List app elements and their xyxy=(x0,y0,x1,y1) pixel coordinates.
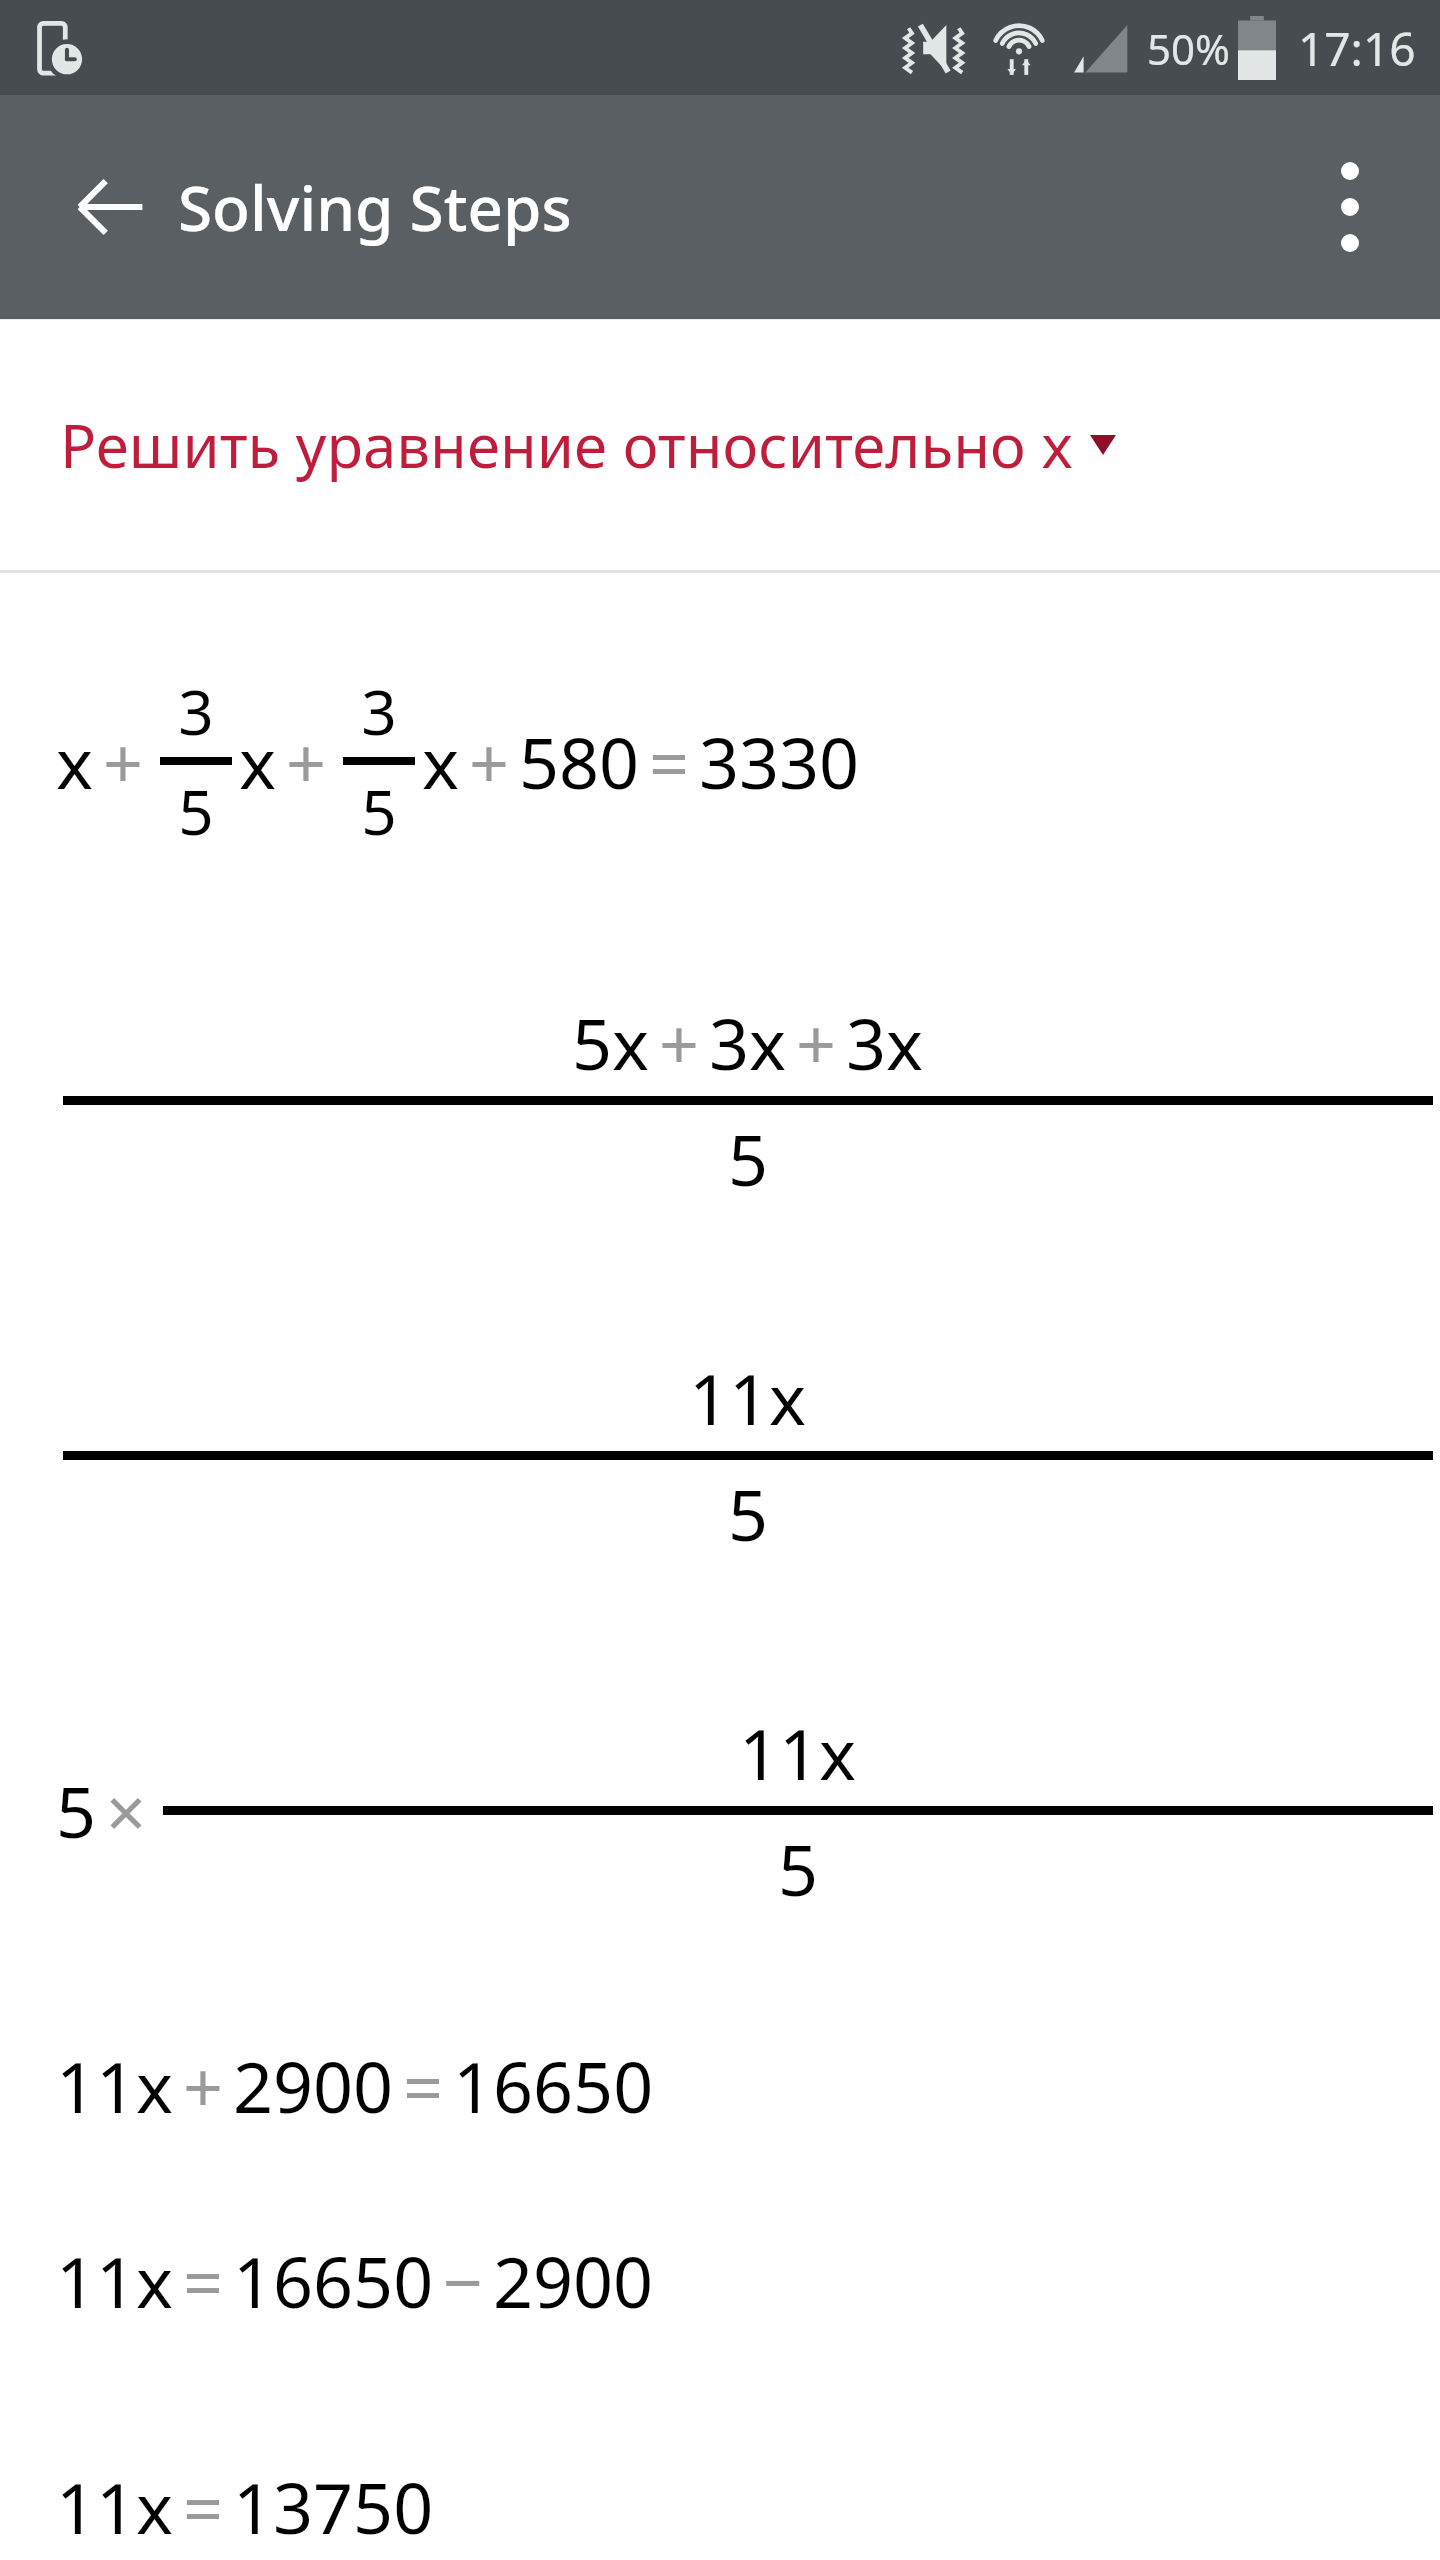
button[interactable]: 11x xyxy=(0,2383,1440,2560)
staticText: 5 xyxy=(728,1111,769,1206)
button[interactable]: Back xyxy=(38,135,182,279)
staticText: 11x xyxy=(739,1705,857,1800)
button[interactable]: 5 xyxy=(0,1613,1440,1973)
button[interactable]: Решить уравнение относительно x xyxy=(0,320,1440,570)
staticText: 2900 xyxy=(233,2038,394,2133)
staticText: 5 xyxy=(56,1763,97,1858)
staticText: 11x xyxy=(56,2459,174,2554)
button[interactable]: 5x xyxy=(0,903,1440,1263)
staticText: = xyxy=(183,2459,224,2554)
staticText: x xyxy=(422,714,460,809)
staticText: 3x xyxy=(846,995,924,1090)
staticText: 11x xyxy=(689,1350,807,1445)
staticText: + xyxy=(659,995,700,1090)
staticText: 2900 xyxy=(493,2233,654,2328)
staticText: + xyxy=(796,995,837,1090)
staticText: + xyxy=(286,714,327,809)
staticText: = xyxy=(649,714,690,809)
button[interactable]: 11x xyxy=(0,2178,1440,2383)
staticText: 3 xyxy=(361,669,397,753)
staticText: 11x xyxy=(56,2038,174,2133)
staticText: 16650 xyxy=(453,2038,654,2133)
staticText: 5 xyxy=(728,1466,769,1561)
staticText: 3x xyxy=(709,995,787,1090)
staticText: x xyxy=(239,714,277,809)
staticText: 5 xyxy=(361,769,397,853)
staticText: 5 xyxy=(178,769,214,853)
staticText: 13750 xyxy=(233,2459,434,2554)
staticText: 3330 xyxy=(699,714,860,809)
staticText: Решить уравнение относительно x xyxy=(60,404,1074,486)
staticText: − xyxy=(443,2233,484,2328)
button[interactable]: x xyxy=(0,573,1440,903)
button[interactable]: 11x xyxy=(0,1973,1440,2178)
staticText: 3 xyxy=(178,669,214,753)
staticText: + xyxy=(469,714,510,809)
staticText: 16650 xyxy=(233,2233,434,2328)
staticText: 50% xyxy=(1147,20,1230,77)
staticText: 580 xyxy=(519,714,640,809)
staticText: 11x xyxy=(56,2233,174,2328)
staticText: + xyxy=(103,714,144,809)
button[interactable]: 11x xyxy=(0,1263,1440,1613)
staticText: 5 xyxy=(778,1821,819,1916)
button[interactable]: More options xyxy=(1278,135,1422,279)
staticText: Solving Steps xyxy=(178,165,572,249)
staticText: 5x xyxy=(572,995,650,1090)
staticText: = xyxy=(183,2233,224,2328)
staticText: + xyxy=(183,2038,224,2133)
staticText: = xyxy=(403,2038,444,2133)
staticText: 17:16 xyxy=(1298,17,1416,80)
staticText: x xyxy=(56,714,94,809)
staticText: × xyxy=(106,1763,147,1858)
